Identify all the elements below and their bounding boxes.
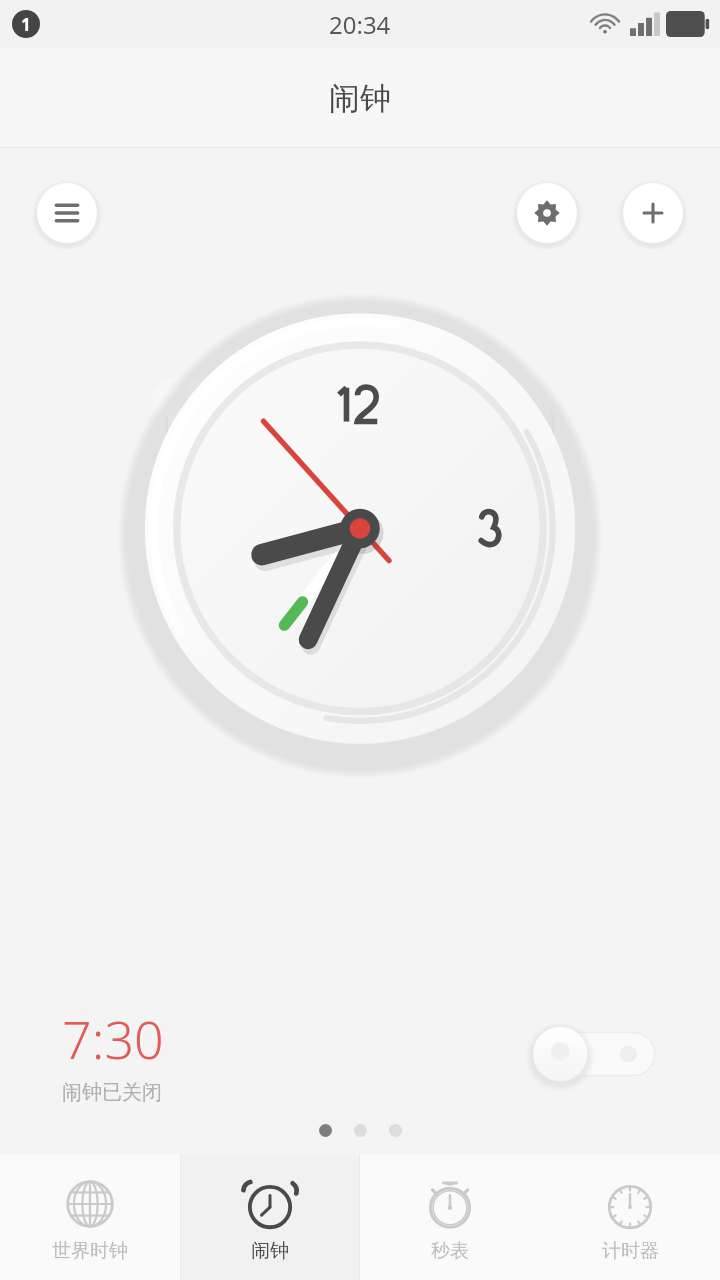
staticText: 1: [21, 13, 31, 36]
button[interactable]: 计时器: [540, 1155, 720, 1280]
staticText: 世界时钟: [52, 1239, 128, 1263]
button[interactable]: 世界时钟: [0, 1155, 180, 1280]
staticText: 秒表: [431, 1239, 469, 1263]
staticText: 20:34: [329, 8, 391, 41]
staticText: 7:30: [62, 1003, 164, 1074]
staticText: 闹钟: [251, 1239, 289, 1263]
button[interactable]: Settings: [516, 182, 578, 244]
button[interactable]: Alarm toggle, off: [528, 1025, 658, 1083]
button[interactable]: 闹钟: [180, 1155, 360, 1280]
button[interactable]: 秒表: [360, 1155, 540, 1280]
staticText: 闹钟已关闭: [62, 1080, 162, 1105]
staticText: 闹钟: [329, 79, 391, 118]
button[interactable]: 7:30: [0, 984, 720, 1124]
button[interactable]: Add alarm: [622, 182, 684, 244]
staticText: 计时器: [602, 1239, 659, 1263]
button[interactable]: Menu: [36, 182, 98, 244]
